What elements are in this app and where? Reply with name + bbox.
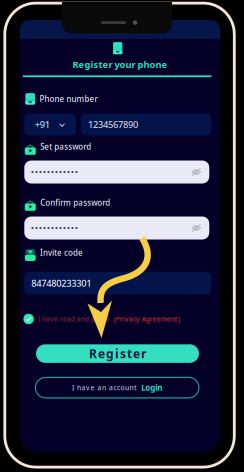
button[interactable]: I have an account bbox=[35, 377, 199, 398]
button[interactable]: Register bbox=[36, 344, 199, 363]
staticText: Set password bbox=[40, 141, 91, 152]
staticText: Phone number bbox=[39, 93, 97, 104]
staticText: Login bbox=[141, 382, 162, 393]
staticText: Invite code bbox=[40, 247, 83, 258]
button[interactable]: +91 bbox=[24, 113, 76, 135]
staticText: +91 bbox=[35, 118, 50, 131]
staticText: Register bbox=[89, 346, 146, 361]
staticText: [Privacy Agreement] bbox=[114, 315, 180, 323]
staticText: Register your phone bbox=[72, 58, 167, 71]
staticText: 847480233301 bbox=[31, 277, 91, 289]
staticText: I have an account bbox=[72, 383, 137, 392]
button[interactable]: I have read and agree bbox=[23, 313, 210, 324]
staticText: 1234567890 bbox=[88, 118, 138, 131]
staticText: I have read and agree bbox=[38, 315, 110, 323]
staticText: Confirm password bbox=[40, 197, 110, 208]
